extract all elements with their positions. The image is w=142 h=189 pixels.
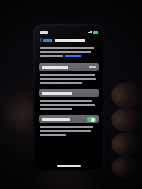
button[interactable]: Toggle on bbox=[87, 117, 96, 122]
button[interactable]: Learn more bbox=[65, 55, 81, 57]
button[interactable] bbox=[39, 63, 99, 71]
button[interactable]: Back bbox=[39, 37, 53, 43]
button[interactable]: Toggle on bbox=[39, 115, 99, 123]
button[interactable] bbox=[39, 89, 99, 97]
